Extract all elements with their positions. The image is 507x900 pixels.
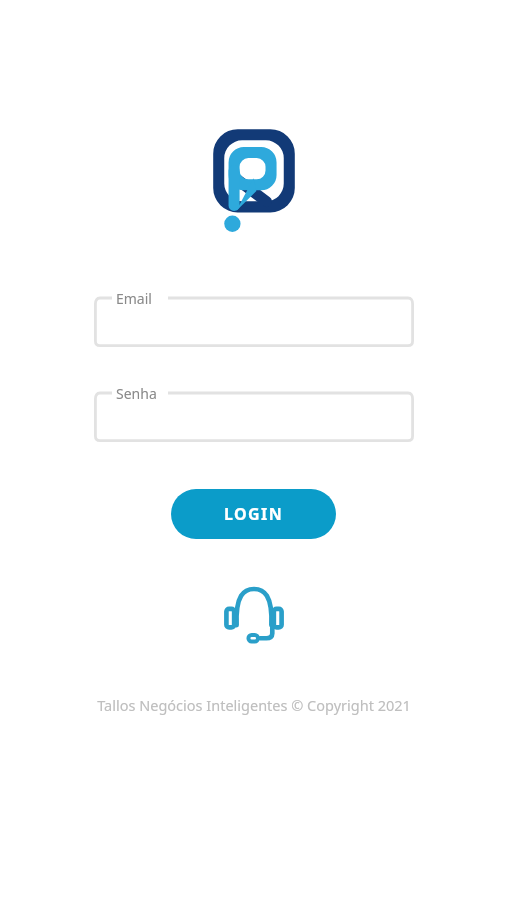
button[interactable]: LOGIN bbox=[171, 489, 336, 539]
button[interactable]: Email bbox=[94, 288, 414, 347]
staticText: Senha bbox=[116, 384, 157, 403]
staticText: Tallos Negócios Inteligentes © Copyright… bbox=[97, 695, 411, 715]
staticText: LOGIN bbox=[224, 503, 284, 525]
staticText: Email bbox=[116, 289, 152, 308]
button[interactable]: Support bbox=[220, 581, 288, 649]
button[interactable]: Senha bbox=[94, 383, 414, 442]
